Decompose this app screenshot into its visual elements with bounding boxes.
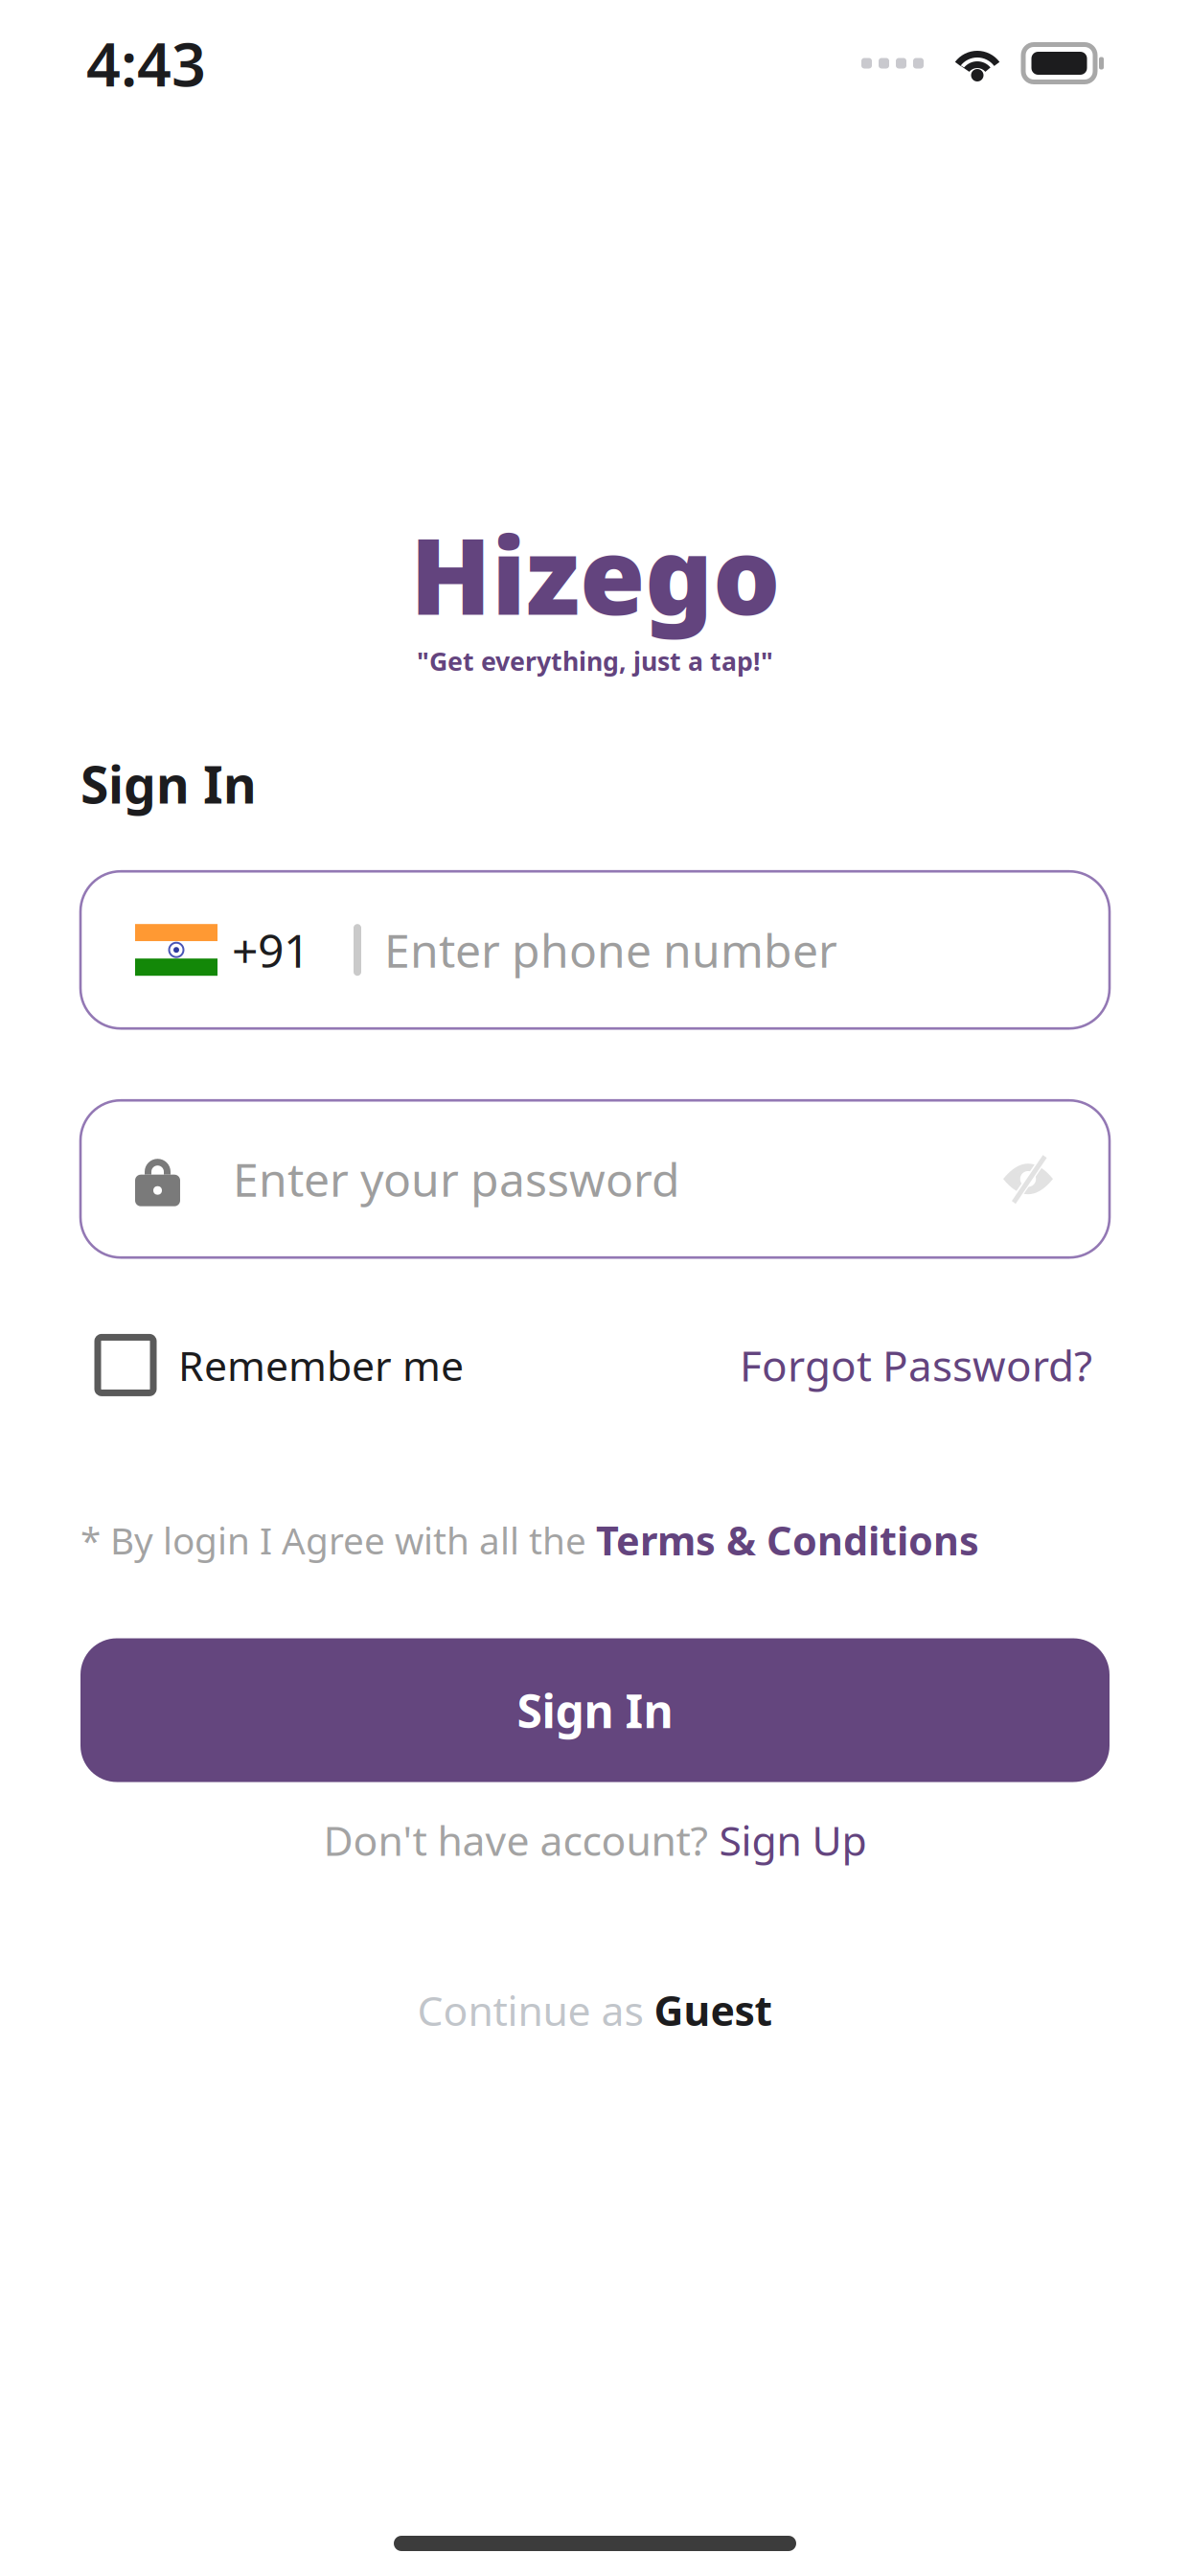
staticText: Guest <box>654 1983 773 2037</box>
staticText: "Get everything, just a tap!" <box>417 644 773 678</box>
staticText: Continue as <box>417 1983 654 2037</box>
button[interactable]: Terms & Conditions <box>596 1514 979 1566</box>
staticText: Remember me <box>178 1338 464 1392</box>
button[interactable]: Sign Up <box>719 1813 867 1867</box>
staticText: +91 <box>232 919 309 980</box>
button[interactable]: Sign In <box>80 1638 1110 1782</box>
staticText: Don't have account? <box>323 1813 719 1867</box>
staticText: Sign In <box>517 1680 673 1741</box>
button[interactable]: Enter your password <box>135 1148 1001 1209</box>
button[interactable]: +91 <box>80 871 1110 1028</box>
staticText: Forgot Password? <box>740 1337 1092 1393</box>
button[interactable]: Show password <box>1001 1151 1055 1207</box>
staticText: Sign Up <box>719 1813 867 1867</box>
staticText: 4:43 <box>86 23 206 103</box>
staticText: Hizego <box>410 503 780 644</box>
staticText: Enter phone number <box>384 919 837 980</box>
staticText: Enter your password <box>233 1148 680 1209</box>
staticText: Sign In <box>80 750 257 818</box>
button[interactable]: Continue as <box>417 1983 773 2037</box>
button[interactable]: Forgot Password? <box>740 1337 1092 1393</box>
button[interactable]: Remember me <box>98 1337 464 1393</box>
staticText: * By login I Agree with all the <box>80 1516 596 1565</box>
staticText: Terms & Conditions <box>596 1514 979 1566</box>
